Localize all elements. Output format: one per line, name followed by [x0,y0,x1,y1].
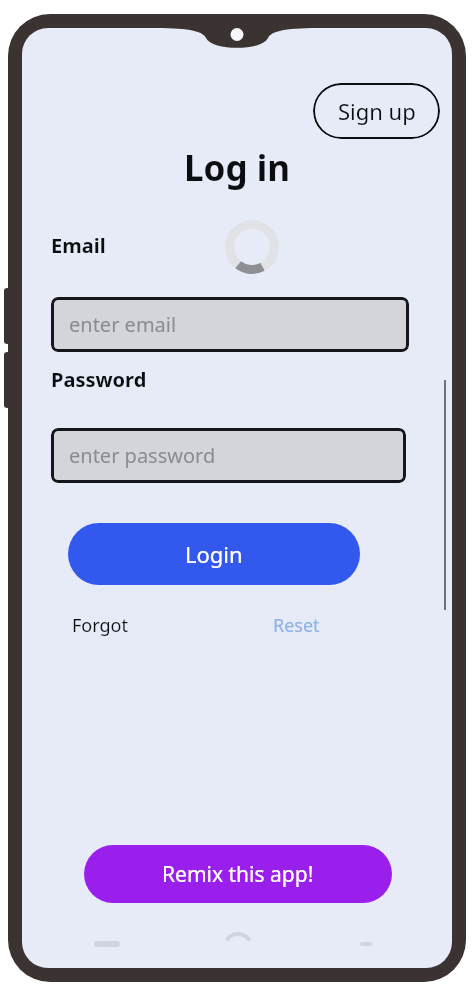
button[interactable]: Sign up [313,83,440,139]
staticText: enter password [69,442,216,469]
button[interactable]: enter email [51,297,409,352]
staticText: Remix this app! [162,860,314,889]
staticText: Forgot password? [72,613,212,643]
staticText: enter email [69,311,177,338]
staticText: Reset password [273,613,401,643]
staticText: Password [51,366,147,393]
staticText: Sign up [338,96,416,126]
staticText: Log in [184,144,290,192]
button[interactable]: enter password [51,428,406,483]
staticText: Login [185,539,243,569]
button[interactable]: Remix this app! [84,845,392,903]
button[interactable]: Reset password [273,613,401,643]
staticText: Email [51,232,106,259]
button[interactable]: Login [68,523,360,585]
button[interactable]: Forgot password? [72,613,212,643]
